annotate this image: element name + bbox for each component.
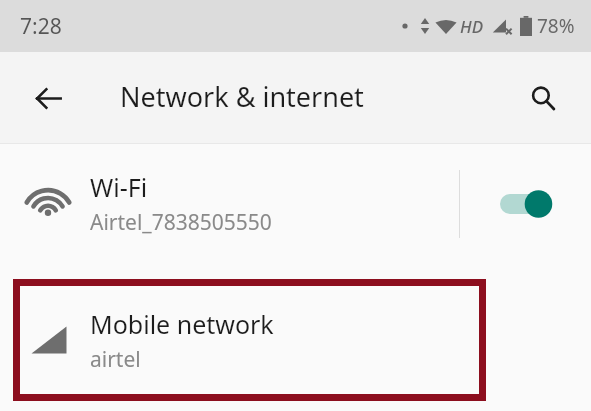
button[interactable]: Back (24, 74, 72, 122)
button[interactable]: Wi-Fi (0, 156, 459, 251)
staticText: Airtel_7838505550 (90, 208, 272, 237)
button[interactable]: Mobile network (0, 279, 591, 401)
staticText: 7:28 (20, 12, 62, 41)
staticText: airtel (90, 345, 141, 374)
staticText: Mobile network (90, 307, 274, 341)
staticText: 78% (537, 13, 575, 39)
button[interactable] (460, 156, 591, 251)
staticText: HD (460, 15, 484, 38)
staticText: Network & internet (120, 78, 364, 115)
button[interactable]: Search (519, 74, 567, 122)
staticText: Wi-Fi (90, 170, 148, 204)
